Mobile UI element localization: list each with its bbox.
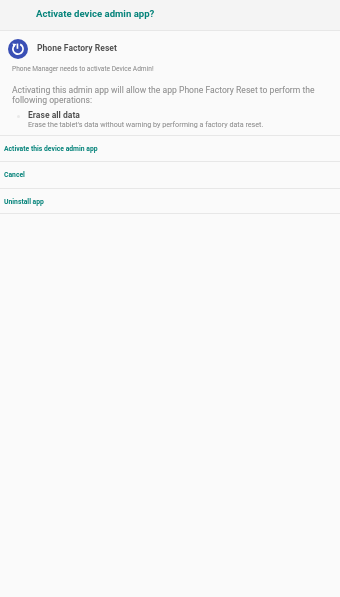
staticText: Cancel (4, 171, 25, 179)
staticText: Erase all data (28, 110, 80, 120)
staticText: Phone Manager needs to activate Device A… (12, 65, 154, 73)
staticText: Activate this device admin app (4, 145, 98, 153)
staticText: Erase the tablet's data without warning … (28, 120, 264, 128)
staticText: Uninstall app (4, 198, 44, 206)
button[interactable]: Cancel (0, 162, 340, 188)
staticText: Activate device admin app? (36, 8, 155, 19)
button[interactable]: Activate this device admin app (0, 136, 340, 162)
staticText: Activating this admin app will allow the… (12, 85, 326, 105)
other: Phone Factory Reset app icon (8, 39, 28, 59)
button[interactable]: Uninstall app (0, 189, 340, 215)
staticText: Phone Factory Reset (37, 43, 117, 53)
